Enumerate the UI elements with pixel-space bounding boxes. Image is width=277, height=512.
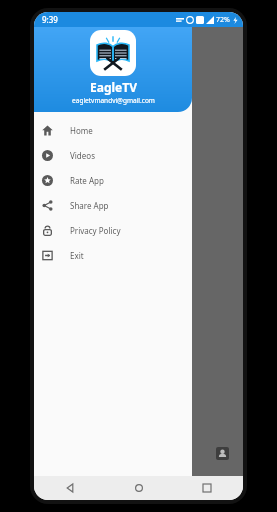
staticText: Exit (70, 250, 84, 261)
button[interactable]: EagleTV (34, 27, 192, 112)
button[interactable]: Recents (197, 478, 217, 498)
staticText: Home (70, 125, 93, 136)
staticText: Rate App (70, 175, 104, 186)
button[interactable]: Privacy Policy (34, 218, 192, 243)
staticText: 72% (216, 15, 230, 25)
button[interactable]: Videos (34, 143, 192, 168)
button[interactable]: Rate App (34, 168, 192, 193)
button[interactable]: Share App (34, 193, 192, 218)
button[interactable]: Back (60, 478, 80, 498)
button[interactable]: Account (213, 444, 231, 462)
button[interactable]: Exit (34, 243, 192, 268)
staticText: EagleTV (90, 79, 137, 95)
button[interactable]: PLAY (38, 118, 102, 146)
staticText: 9:39 (42, 14, 58, 25)
staticText: eagletvmandvi@gmail.com (72, 96, 155, 105)
staticText: Videos (70, 150, 95, 161)
staticText: PLAY (54, 123, 86, 141)
staticText: Privacy Policy (70, 225, 121, 236)
button[interactable]: Home (129, 478, 149, 498)
button[interactable]: Home (34, 118, 192, 143)
staticText: Share App (70, 200, 109, 211)
